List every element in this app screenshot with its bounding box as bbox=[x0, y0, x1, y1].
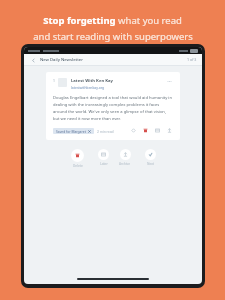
staticText: Stop forgetting what you read bbox=[43, 14, 182, 27]
staticText: and start reading with superpowers bbox=[33, 30, 193, 43]
button[interactable]: Later bbox=[98, 149, 109, 166]
staticText: Archive bbox=[119, 162, 131, 166]
button[interactable]: Archive bbox=[119, 149, 131, 166]
staticText: Latest With Ken Kay bbox=[71, 78, 113, 84]
button[interactable]: Next bbox=[145, 149, 156, 166]
button[interactable]: Back bbox=[29, 56, 37, 64]
button[interactable]: Comment bbox=[130, 127, 137, 134]
staticText: Next bbox=[147, 162, 154, 166]
staticText: New Daily Newsletter bbox=[40, 57, 83, 63]
button[interactable]: Remove bbox=[142, 127, 149, 134]
staticText: Later bbox=[100, 162, 108, 166]
staticText: Saved for Margaret bbox=[56, 129, 86, 133]
staticText: latestwithkenkay.org bbox=[71, 85, 105, 90]
button[interactable]: Archive bbox=[154, 127, 161, 134]
button[interactable]: More options bbox=[166, 78, 173, 85]
staticText: 1 bbox=[53, 78, 55, 83]
button[interactable]: 1 bbox=[46, 72, 180, 140]
staticText: 1 of 3 bbox=[187, 57, 197, 62]
button[interactable]: Share bbox=[166, 127, 173, 134]
staticText: Douglas Engelbart designed a tool that w… bbox=[53, 95, 173, 121]
staticText: Delete bbox=[73, 164, 83, 168]
button[interactable]: Delete bbox=[71, 149, 84, 168]
staticText: 2 min read bbox=[97, 129, 114, 133]
button[interactable]: Saved for Margaret bbox=[53, 128, 94, 134]
